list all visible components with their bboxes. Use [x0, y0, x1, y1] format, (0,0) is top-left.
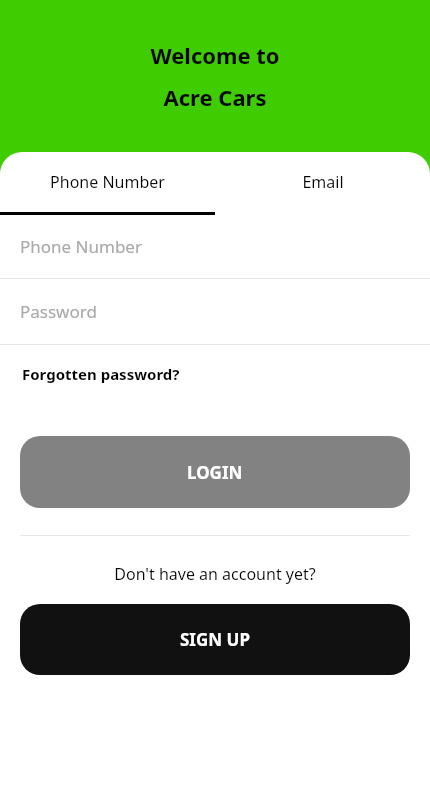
button[interactable]: Password	[0, 279, 430, 344]
button[interactable]: Forgotten password?	[20, 362, 182, 386]
button[interactable]: Email	[215, 152, 430, 215]
staticText: Forgotten password?	[22, 364, 180, 384]
button[interactable]: Phone Number	[0, 215, 430, 278]
staticText: SIGN UP	[180, 628, 250, 651]
staticText: Don't have an account yet?	[0, 563, 430, 585]
staticText: Email	[302, 171, 344, 193]
staticText: Password	[20, 300, 97, 323]
staticText: Phone Number	[50, 171, 165, 193]
button[interactable]: SIGN UP	[20, 604, 410, 675]
staticText: LOGIN	[187, 461, 243, 484]
button[interactable]: Phone Number	[0, 152, 215, 215]
button[interactable]: LOGIN	[20, 436, 410, 508]
staticText: Welcome to	[150, 40, 280, 70]
staticText: Acre Cars	[163, 82, 267, 112]
staticText: Phone Number	[20, 235, 142, 258]
